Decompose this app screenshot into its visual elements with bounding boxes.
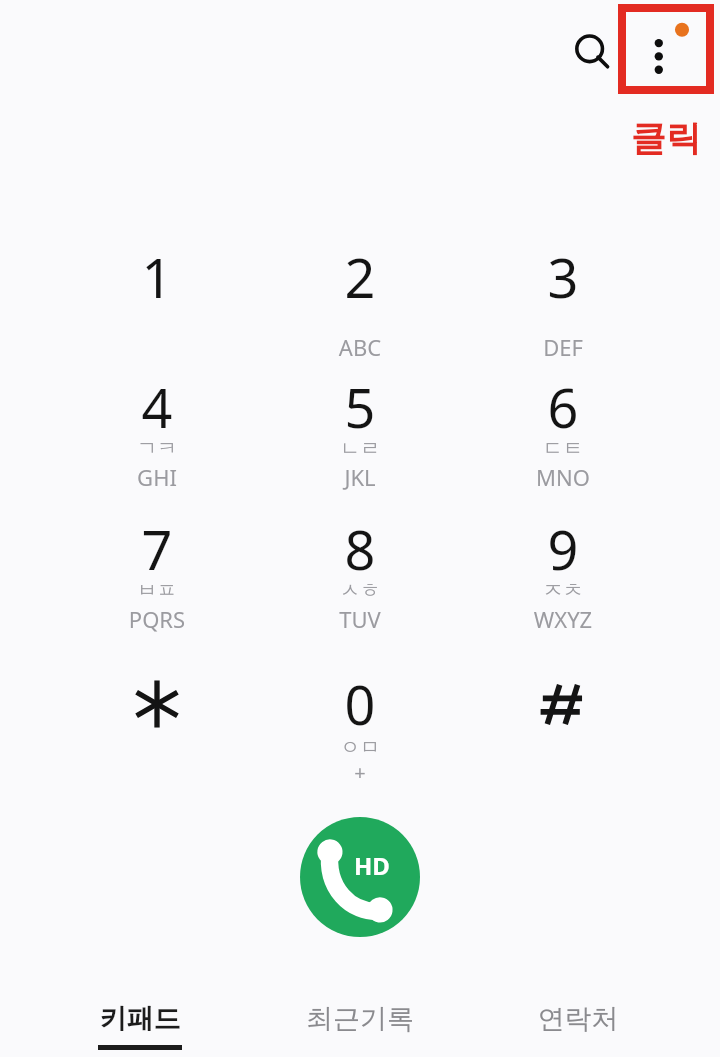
button[interactable]: Star (67, 658, 247, 768)
staticText: 4 (67, 370, 247, 498)
staticText: 2 (270, 240, 450, 368)
button[interactable]: 2 (270, 240, 450, 368)
staticText: GHI (67, 462, 247, 590)
staticText: HD (354, 849, 416, 937)
staticText: 0 (270, 667, 450, 802)
button[interactable]: 7 (67, 512, 247, 640)
staticText: 6 (473, 370, 653, 498)
staticText: 3 (473, 240, 653, 368)
button[interactable]: 9 (473, 512, 653, 640)
staticText: ㅂㅍ (67, 578, 247, 706)
button[interactable]: 6 (473, 370, 653, 498)
staticText: 7 (67, 512, 247, 640)
staticText: 5 (270, 370, 450, 498)
staticText: TUV (270, 604, 450, 732)
staticText: ㅅㅎ (270, 578, 450, 706)
staticText: + (270, 759, 450, 894)
button[interactable]: More options (626, 12, 706, 86)
staticText: 최근기록 (250, 1002, 470, 1057)
staticText: 8 (270, 512, 450, 640)
button[interactable]: 키패드 (30, 990, 250, 1057)
staticText: 9 (473, 512, 653, 640)
button[interactable]: Search (560, 20, 626, 86)
staticText: ㅈㅊ (473, 578, 653, 706)
button[interactable]: 0 (270, 655, 450, 790)
staticText: 클릭 (618, 116, 714, 1057)
button[interactable]: 1 (67, 240, 247, 368)
staticText: 1 (67, 240, 247, 368)
staticText: ㅇㅁ (270, 735, 450, 870)
button[interactable]: 최근기록 (250, 990, 470, 1057)
staticText: ㄱㅋ (67, 436, 247, 564)
button[interactable]: 연락처 (468, 990, 688, 1057)
staticText: PQRS (67, 604, 247, 732)
staticText: ㄷㅌ (473, 436, 653, 564)
staticText: ㄴㄹ (270, 436, 450, 564)
button[interactable]: 4 (67, 370, 247, 498)
staticText: MNO (473, 462, 653, 590)
staticText: 키패드 (30, 1002, 250, 1057)
button[interactable]: 5 (270, 370, 450, 498)
button[interactable]: 8 (270, 512, 450, 640)
staticText: ABC (270, 332, 450, 460)
staticText: 연락처 (468, 1002, 688, 1057)
button[interactable]: 3 (473, 240, 653, 368)
staticText: JKL (270, 462, 450, 590)
staticText: DEF (473, 332, 653, 460)
button[interactable]: Call (300, 817, 420, 937)
staticText: WXYZ (473, 604, 653, 732)
button[interactable]: Pound (473, 658, 653, 768)
